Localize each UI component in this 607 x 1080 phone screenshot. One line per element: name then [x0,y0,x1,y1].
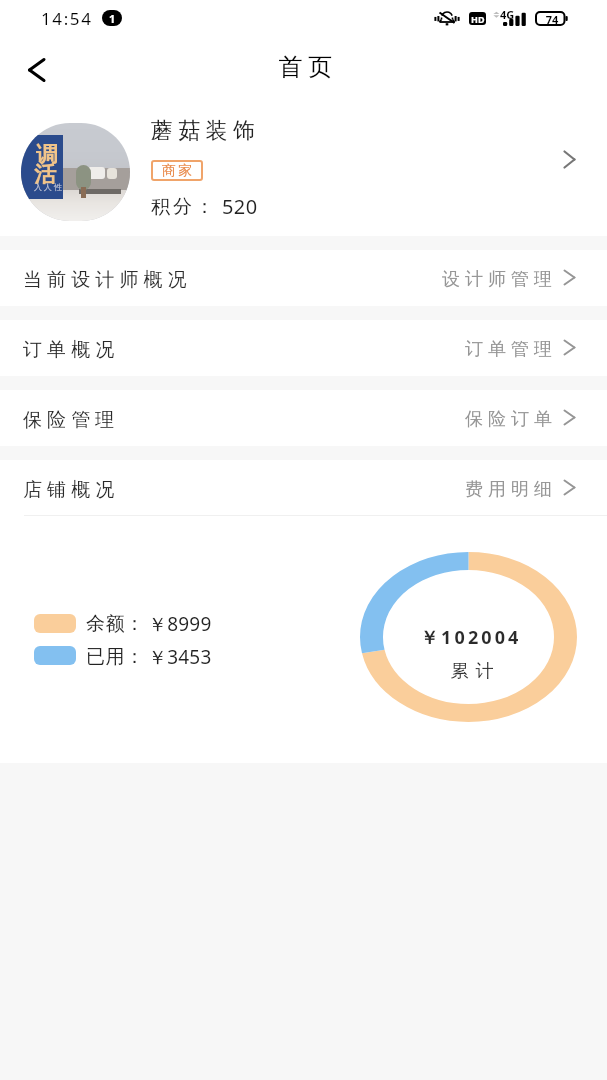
staticText: 14:54 [41,7,93,30]
staticText: ￥3453 [148,644,212,670]
staticText: 费用明细 [343,478,557,501]
staticText: 保险管理 [23,408,120,432]
staticText: 积分： [151,195,218,219]
staticText: 商家 [161,162,193,180]
staticText: 保险订单 [343,408,557,431]
staticText: ￥8999 [148,611,212,637]
button[interactable]: 订单概况 [0,320,607,376]
staticText: 首页 [276,52,335,82]
button[interactable]: 当前设计师概况 [0,250,607,306]
staticText: 店铺概况 [23,478,120,502]
staticText: 订单管理 [343,338,557,361]
staticText: 累计 [447,660,497,683]
staticText: HD [471,13,485,25]
staticText: 设计师管理 [343,268,557,291]
staticText: 活 [34,161,56,189]
staticText: 4G [500,7,515,22]
staticText: 74 [542,12,562,27]
staticText: 1 [109,11,116,26]
button[interactable]: 调 [0,95,607,236]
staticText: ￥102004 [420,625,522,650]
button[interactable]: 店铺概况 [0,460,607,516]
staticText: 余额： [86,612,145,636]
button[interactable]: 保险管理 [0,390,607,446]
staticText: 订单概况 [23,338,120,362]
staticText: 调 [36,141,58,169]
staticText: 已用： [86,645,145,669]
staticText: 蘑菇装饰 [151,117,261,145]
button[interactable]: Back [18,52,54,88]
staticText: 当前设计师概况 [23,268,192,292]
staticText: 520 [222,193,258,220]
staticText: 入人性 [33,182,63,192]
